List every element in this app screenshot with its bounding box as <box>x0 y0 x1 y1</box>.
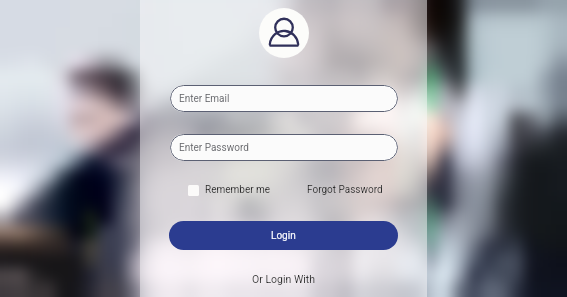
button[interactable]: Remember me <box>188 183 271 197</box>
staticText: Enter Email <box>179 93 230 105</box>
staticText: Or Login With <box>252 273 315 285</box>
button[interactable]: Profile <box>259 8 309 58</box>
button[interactable]: Enter Email <box>170 85 398 112</box>
staticText: Remember me <box>205 184 271 196</box>
button[interactable]: Forgot Password <box>307 183 383 197</box>
staticText: Login <box>271 230 296 242</box>
staticText: Forgot Password <box>307 184 383 196</box>
staticText: Enter Password <box>179 142 249 154</box>
button[interactable]: Or Login With <box>169 273 398 285</box>
button[interactable]: Login <box>169 221 398 250</box>
button[interactable]: Enter Password <box>170 134 398 161</box>
